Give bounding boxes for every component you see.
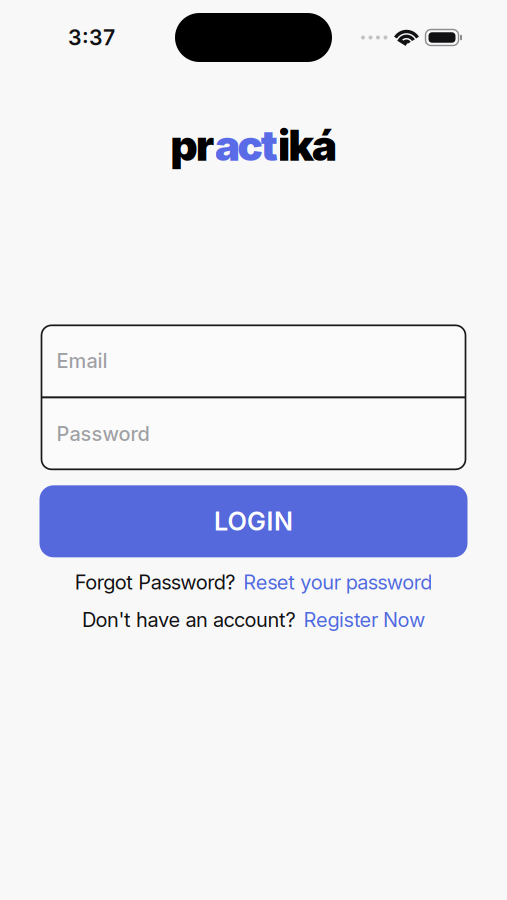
button[interactable]: Reset your password	[243, 570, 432, 594]
button[interactable]: LOGIN	[39, 485, 467, 557]
staticText: 3:37	[68, 25, 115, 50]
staticText: Reset your password	[243, 570, 432, 594]
button[interactable]: Email	[41, 325, 465, 396]
staticText: act	[215, 120, 278, 170]
staticText: Forgot Password?	[75, 570, 235, 594]
staticText: Password	[56, 422, 149, 446]
staticText: LOGIN	[214, 506, 293, 536]
staticText: pr	[170, 120, 215, 170]
staticText: Register Now	[303, 608, 425, 631]
staticText: Email	[56, 349, 107, 373]
staticText: Don't have an account?	[82, 608, 295, 631]
button[interactable]: Register Now	[303, 608, 425, 631]
staticText: iká	[278, 120, 337, 170]
button[interactable]: Password	[41, 398, 465, 469]
